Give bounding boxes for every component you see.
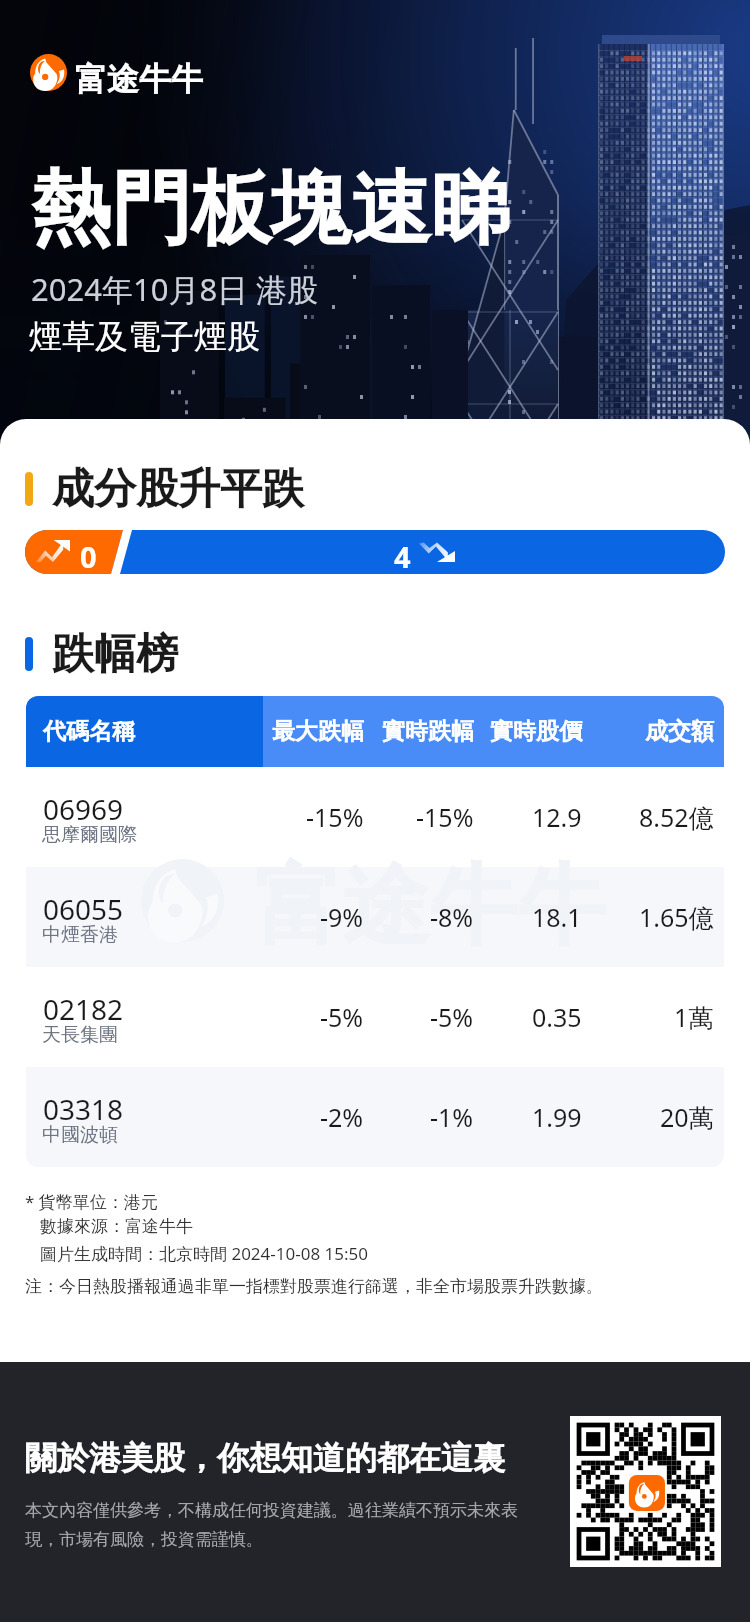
staticText: 熱門板塊速睇 xyxy=(31,159,511,260)
button[interactable]: 02182 xyxy=(26,967,724,1067)
staticText: 思摩爾國際 xyxy=(42,823,137,847)
staticText: 0.35 xyxy=(532,1000,582,1034)
staticText: 實時股價 xyxy=(490,717,582,746)
staticText: 天長集團 xyxy=(42,1023,118,1047)
staticText: -1% xyxy=(430,1100,474,1134)
staticText: 富途牛牛 xyxy=(75,59,203,99)
staticText: 20萬 xyxy=(660,1100,714,1134)
staticText: 中國波頓 xyxy=(42,1123,118,1147)
staticText: -9% xyxy=(320,900,364,934)
staticText: 8.52億 xyxy=(639,800,714,834)
staticText: 06055 xyxy=(43,890,124,928)
staticText: 18.1 xyxy=(532,900,582,934)
staticText: 成分股升平跌 xyxy=(52,463,304,516)
staticText: -5% xyxy=(430,1000,474,1034)
staticText: 圖片生成時間：北京時間 2024-10-08 15:50 xyxy=(40,1242,369,1265)
button[interactable]: 06969 xyxy=(26,767,724,867)
staticText: 實時跌幅 xyxy=(382,717,474,746)
staticText: 本文內容僅供參考，不構成任何投資建議。過往業績不預示未來表 xyxy=(25,1500,518,1521)
staticText: 富途牛牛 xyxy=(254,851,606,962)
button[interactable]: 0 xyxy=(25,530,725,574)
staticText: -15% xyxy=(306,800,364,834)
staticText: -8% xyxy=(430,900,474,934)
staticText: 關於港美股，你想知道的都在這裏 xyxy=(25,1438,505,1478)
staticText: 12.9 xyxy=(532,800,582,834)
staticText: 1.99 xyxy=(532,1100,582,1134)
staticText: 2024年10月8日 港股 xyxy=(31,268,319,310)
staticText: -15% xyxy=(416,800,474,834)
staticText: 現，市場有風險，投資需謹慎。 xyxy=(25,1529,263,1550)
staticText: 代碼名稱 xyxy=(43,717,135,746)
button[interactable]: QR code xyxy=(570,1416,721,1567)
staticText: 06969 xyxy=(43,790,124,828)
staticText: 0 xyxy=(80,537,97,574)
staticText: 中煙香港 xyxy=(42,923,118,947)
staticText: 跌幅榜 xyxy=(52,628,178,681)
staticText: 02182 xyxy=(43,990,124,1028)
staticText: -2% xyxy=(320,1100,364,1134)
button[interactable]: 06055 xyxy=(26,867,724,967)
staticText: 最大跌幅 xyxy=(272,717,364,746)
staticText: 煙草及電子煙股 xyxy=(29,316,260,358)
staticText: -5% xyxy=(320,1000,364,1034)
staticText: 03318 xyxy=(43,1090,124,1128)
staticText: 數據來源：富途牛牛 xyxy=(40,1216,193,1237)
staticText: 注：今日熱股播報通過非單一指標對股票進行篩選，非全市場股票升跌數據。 xyxy=(25,1276,603,1297)
button[interactable]: 03318 xyxy=(26,1067,724,1167)
staticText: * 貨幣單位：港元 xyxy=(25,1190,158,1213)
staticText: 1.65億 xyxy=(639,900,714,934)
staticText: 4 xyxy=(394,537,411,574)
staticText: 成交額 xyxy=(645,717,714,746)
staticText: 1萬 xyxy=(674,1000,714,1034)
